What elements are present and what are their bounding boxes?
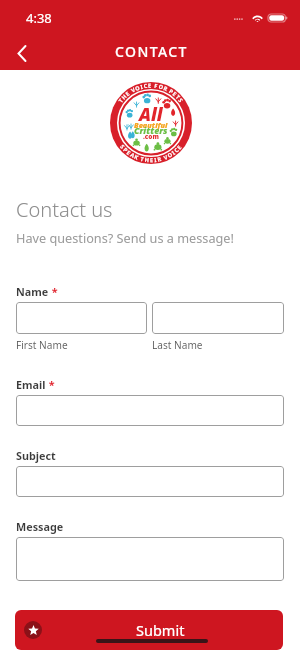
staticText: Contact us bbox=[16, 196, 113, 223]
staticText: * bbox=[46, 377, 55, 392]
button[interactable] bbox=[16, 537, 284, 581]
staticText: * bbox=[49, 284, 58, 299]
button[interactable] bbox=[16, 395, 284, 426]
button[interactable]: Submit bbox=[15, 610, 283, 650]
button[interactable] bbox=[16, 302, 147, 334]
staticText: CONTACT bbox=[115, 42, 188, 61]
staticText: Submit bbox=[136, 620, 185, 640]
staticText: 4:38 bbox=[26, 9, 52, 27]
button[interactable]: Back bbox=[1, 32, 43, 74]
staticText: Email bbox=[16, 377, 46, 392]
button[interactable] bbox=[16, 466, 284, 497]
button[interactable] bbox=[152, 302, 284, 334]
staticText: Message bbox=[16, 519, 64, 534]
staticText: Have questions? Send us a message! bbox=[16, 229, 234, 246]
staticText: Name bbox=[16, 284, 49, 299]
staticText: Subject bbox=[16, 448, 56, 463]
staticText: Last Name bbox=[152, 338, 203, 352]
staticText: First Name bbox=[16, 338, 68, 352]
